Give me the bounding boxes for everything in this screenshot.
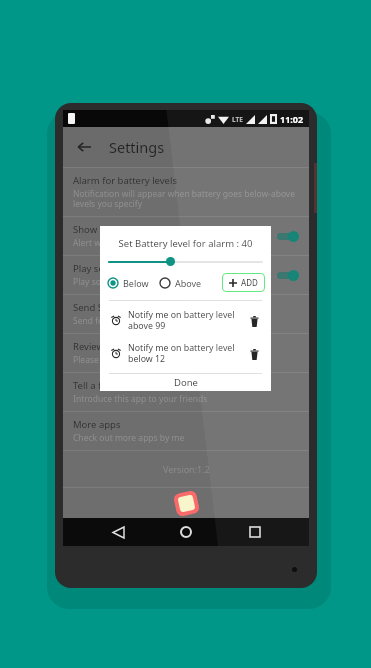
button[interactable]: Home xyxy=(172,518,200,546)
button[interactable]: Tell a friend xyxy=(63,373,309,411)
staticText: Send feedback or report a problem xyxy=(73,315,213,327)
staticText: Alert with notification for alarms xyxy=(73,237,203,249)
button[interactable]: Above xyxy=(159,275,202,291)
button[interactable]: Show Notification xyxy=(63,217,309,255)
button[interactable]: Delete alarm xyxy=(247,347,261,361)
button[interactable]: Notify me on battery level below 12 xyxy=(100,337,271,370)
staticText: 11:02 xyxy=(280,113,304,125)
staticText: Introduce this app to your friends xyxy=(73,393,208,405)
staticText: Above xyxy=(175,277,202,289)
staticText: Alarm for battery levels xyxy=(73,174,177,187)
staticText: Play sound when battery level reached xyxy=(73,276,227,288)
staticText: LTE xyxy=(232,115,243,124)
button[interactable]: Delete alarm xyxy=(247,314,261,328)
button[interactable]: ADD xyxy=(222,273,265,292)
staticText: Settings xyxy=(109,137,165,157)
button[interactable]: Below xyxy=(107,275,149,291)
staticText: Send Support mail xyxy=(73,301,156,314)
staticText: Check out more apps by me xyxy=(73,432,185,444)
staticText: Show Notification xyxy=(73,223,152,236)
button[interactable]: Done xyxy=(100,374,271,391)
staticText: Version:1.2 xyxy=(163,463,210,475)
button[interactable]: Battery level slider xyxy=(108,256,263,267)
button[interactable]: Recents xyxy=(241,518,269,546)
button[interactable]: Send Support mail xyxy=(63,295,309,333)
button[interactable]: Review app xyxy=(63,334,309,372)
staticText: Below xyxy=(123,277,149,289)
staticText: Set Battery level for alarm : 40 xyxy=(100,237,271,250)
button[interactable]: Back xyxy=(70,133,98,161)
staticText: Tell a friend xyxy=(73,379,125,392)
staticText: More apps xyxy=(73,418,121,431)
staticText: Notify me on battery level below 12 xyxy=(128,342,243,365)
staticText: ADD xyxy=(241,277,258,288)
button[interactable]: Play sound xyxy=(63,256,309,294)
button[interactable]: Notify me on battery level above 99 xyxy=(100,304,271,337)
staticText: Please do review our app if you like it … xyxy=(73,354,231,366)
button[interactable]: Back xyxy=(104,518,132,546)
button[interactable]: More apps xyxy=(63,412,309,450)
staticText: Notification will appear when battery go… xyxy=(73,188,295,210)
button[interactable]: Toggle Play sound xyxy=(275,268,299,282)
staticText: Review app xyxy=(73,340,124,353)
button[interactable]: Alarm for battery levels xyxy=(63,168,309,216)
staticText: Play sound xyxy=(73,262,122,275)
staticText: Done xyxy=(174,376,198,389)
button[interactable]: Toggle Show Notification xyxy=(275,229,299,243)
staticText: Notify me on battery level above 99 xyxy=(128,309,243,332)
